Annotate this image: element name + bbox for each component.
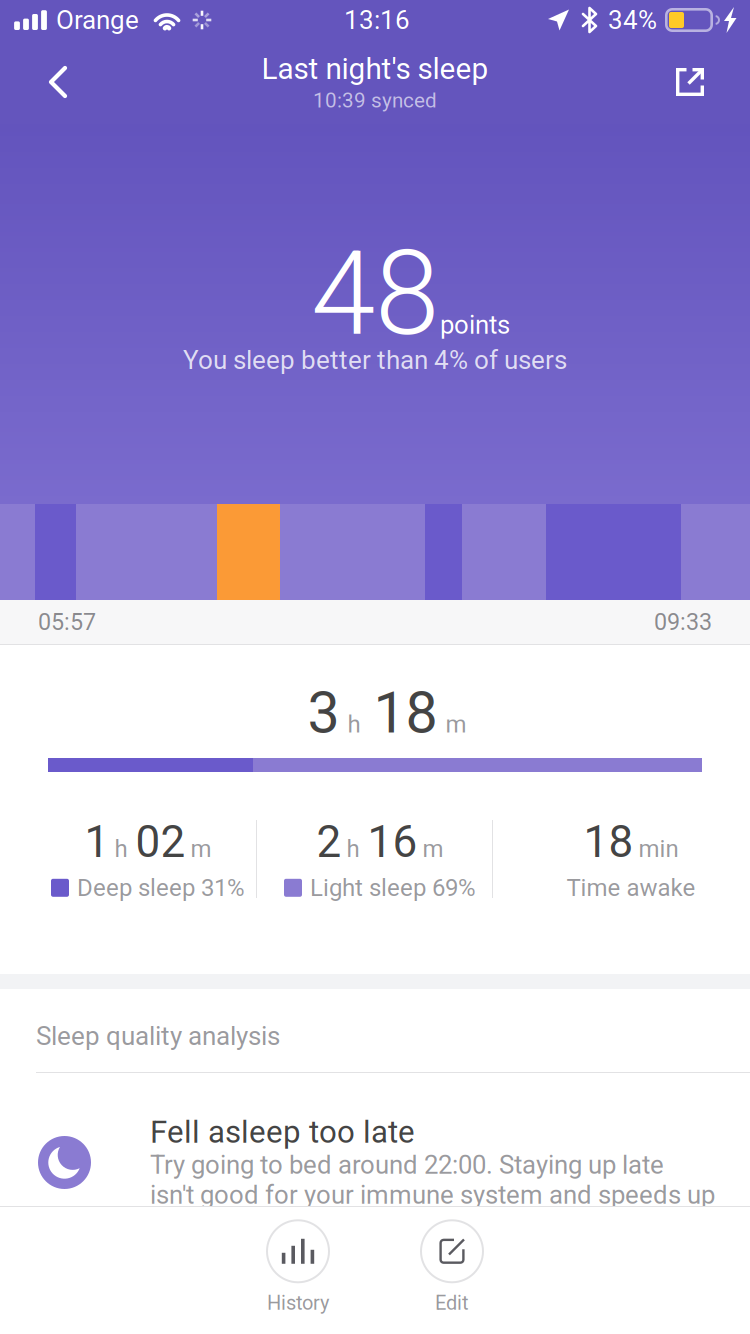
staticText: m [422,835,443,863]
staticText: History [267,1291,329,1315]
button[interactable]: Share [646,40,734,124]
staticText: 18 [583,816,633,868]
staticText: min [638,835,678,863]
staticText: Try going to bed around 22:00. Staying u… [150,1150,664,1180]
button[interactable]: Back [16,40,100,124]
button[interactable]: Edit [372,1212,532,1322]
staticText: Time awake [566,874,695,902]
staticText: Orange [56,5,139,35]
button[interactable]: History [218,1212,378,1322]
staticText: 09:33 [654,608,712,636]
staticText: 05:57 [38,608,96,636]
staticText: 13:16 [344,5,410,35]
staticText: 18 [373,679,437,747]
staticText: isn't good for your immune system and sp… [150,1180,715,1210]
staticText: h [114,835,127,863]
staticText: 02 [135,816,185,868]
staticText: Edit [435,1291,469,1315]
staticText: 3 [307,679,339,747]
staticText: Last night's sleep [261,51,488,86]
staticText: m [445,710,466,738]
staticText: You sleep better than 4% of users [183,345,567,375]
staticText: 2 [316,816,341,868]
staticText: h [346,835,359,863]
staticText: 1 [84,816,109,868]
staticText: Deep sleep 31% [77,874,245,902]
staticText: points [440,310,510,340]
staticText: 48 [311,226,439,362]
staticText: Fell asleep too late [150,1114,415,1150]
staticText: 34% [608,5,657,35]
staticText: Sleep quality analysis [36,1021,280,1051]
staticText: Light sleep 69% [310,874,476,902]
staticText: 10:39 synced [313,88,437,112]
staticText: 16 [367,816,417,868]
staticText: m [190,835,211,863]
staticText: h [347,710,360,738]
